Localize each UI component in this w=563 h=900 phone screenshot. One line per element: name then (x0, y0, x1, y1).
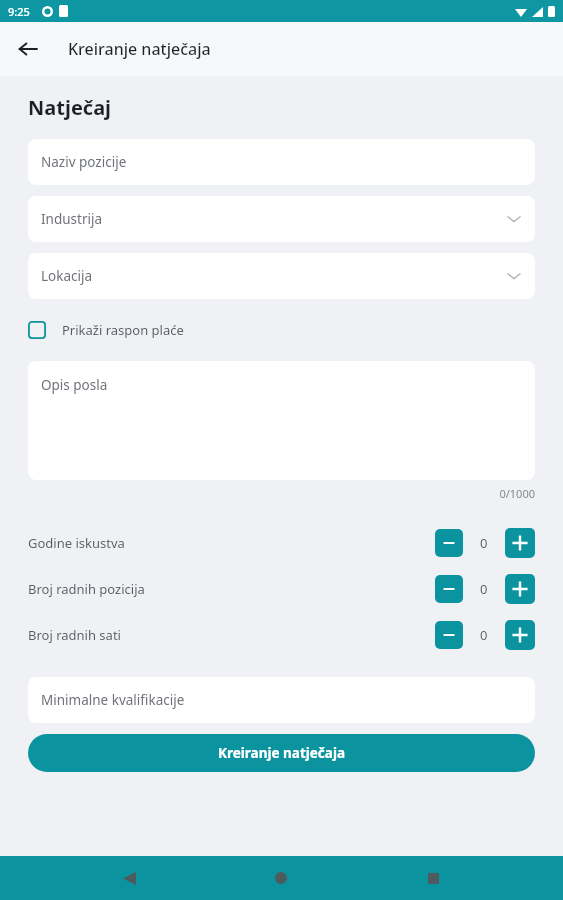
button[interactable]: Increase Godine iskustva (505, 528, 535, 558)
button[interactable]: Opis posla (28, 361, 535, 480)
staticText: Natječaj (28, 94, 112, 121)
staticText: Naziv pozicije (41, 153, 127, 171)
staticText: 0 (480, 626, 488, 644)
button[interactable]: Prikaži raspon plaće (28, 321, 535, 339)
staticText: Minimalne kvalifikacije (41, 691, 185, 709)
staticText: Lokacija (41, 267, 93, 285)
staticText: Broj radnih pozicija (28, 580, 435, 598)
button[interactable]: Back (10, 31, 46, 67)
staticText: Opis posla (41, 376, 108, 394)
button[interactable]: Increase Broj radnih sati (505, 620, 535, 650)
staticText: 0 (480, 580, 488, 598)
staticText: Broj radnih sati (28, 626, 435, 644)
button[interactable]: Increase Broj radnih pozicija (505, 574, 535, 604)
staticText: Kreiranje natječaja (68, 38, 211, 60)
staticText: 9:25 (8, 4, 30, 19)
staticText: Prikaži raspon plaće (62, 321, 184, 339)
button[interactable]: Home (259, 856, 303, 900)
button[interactable]: Naziv pozicije (28, 139, 535, 185)
staticText: 0 (480, 534, 488, 552)
staticText: Godine iskustva (28, 534, 435, 552)
staticText: Kreiranje natječaja (218, 744, 346, 762)
button[interactable]: Back (107, 856, 151, 900)
button[interactable]: Recent apps (411, 856, 455, 900)
button[interactable]: Decrease Godine iskustva (435, 529, 463, 557)
staticText: 0/1000 (28, 486, 535, 501)
button[interactable]: Kreiranje natječaja (28, 734, 535, 772)
button[interactable]: Lokacija (28, 253, 535, 299)
staticText: Industrija (41, 210, 103, 228)
button[interactable]: Minimalne kvalifikacije (28, 677, 535, 723)
button[interactable]: Industrija (28, 196, 535, 242)
button[interactable]: Decrease Broj radnih sati (435, 621, 463, 649)
button[interactable]: Decrease Broj radnih pozicija (435, 575, 463, 603)
